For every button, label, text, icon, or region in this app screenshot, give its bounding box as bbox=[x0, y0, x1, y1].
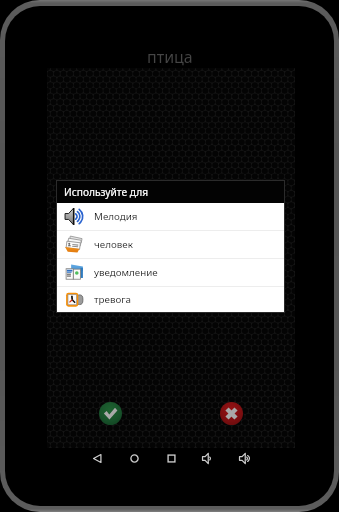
staticText: Мелодия bbox=[94, 210, 138, 223]
staticText: тревога bbox=[94, 293, 131, 306]
button[interactable]: человек bbox=[57, 231, 284, 258]
staticText: человек bbox=[94, 238, 133, 251]
button[interactable]: Мелодия bbox=[57, 203, 284, 230]
button[interactable]: Accept bbox=[99, 402, 122, 425]
button[interactable]: Home bbox=[119, 444, 149, 472]
button[interactable]: уведомление bbox=[57, 259, 284, 286]
button[interactable]: Recent apps bbox=[156, 444, 186, 472]
staticText: Используйте для bbox=[64, 185, 149, 199]
staticText: птица bbox=[147, 46, 193, 68]
button[interactable]: Volume down bbox=[193, 444, 223, 472]
button[interactable]: Back bbox=[82, 444, 112, 472]
button[interactable]: Cancel bbox=[220, 402, 243, 425]
button[interactable]: тревога bbox=[57, 287, 284, 312]
button[interactable]: Volume up bbox=[230, 444, 260, 472]
staticText: уведомление bbox=[94, 266, 158, 279]
